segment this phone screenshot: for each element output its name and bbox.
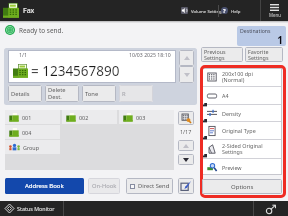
staticText: Favorite Settings	[248, 48, 269, 62]
button[interactable]: R	[119, 85, 153, 102]
staticText: 10/03 2025 18:10	[129, 51, 171, 58]
staticText: 2-Sided Original Settings	[222, 142, 263, 156]
button[interactable]: Density	[202, 105, 282, 121]
button[interactable]: A4	[202, 87, 282, 104]
button[interactable]: Volume Settings	[179, 0, 226, 21]
button[interactable]: Menu	[261, 0, 288, 21]
staticText: ?	[223, 7, 226, 14]
staticText: 001	[22, 114, 32, 121]
staticText: Status Monitor	[17, 205, 55, 212]
button[interactable]: Favorite Settings	[245, 47, 283, 62]
button[interactable]: Scroll down	[178, 154, 194, 165]
staticText: Menu	[269, 12, 281, 18]
button[interactable]: Options	[202, 179, 282, 194]
staticText: Fax	[23, 6, 35, 16]
button[interactable]: Previous Settings	[201, 47, 243, 62]
button[interactable]: Energy Saver	[254, 201, 288, 216]
staticText: = 1234567890	[31, 62, 120, 80]
button[interactable]: New destination	[178, 178, 194, 194]
staticText: 1/17	[180, 128, 192, 135]
staticText: Destinations	[240, 27, 271, 34]
button[interactable]: Tone	[82, 85, 116, 102]
button[interactable]: ?	[220, 0, 242, 21]
staticText: Help	[231, 8, 241, 14]
button[interactable]: Search destination	[178, 111, 194, 125]
button[interactable]: Scroll down	[179, 66, 194, 83]
staticText: Volume Settings	[191, 8, 224, 14]
staticText: Direct Send	[138, 182, 170, 190]
button[interactable]: Delete Dest.	[45, 85, 79, 102]
button[interactable]: Details	[8, 85, 42, 102]
button[interactable]: 004	[5, 125, 60, 139]
button[interactable]: Preview	[202, 159, 282, 175]
button[interactable]: On-Hook	[88, 178, 120, 194]
button[interactable]: 200x100 dpi (Normal)	[202, 68, 282, 86]
staticText: 003	[136, 114, 146, 121]
staticText: 002	[79, 114, 89, 121]
staticText: 004	[22, 129, 32, 136]
staticText: R	[122, 90, 126, 98]
staticText: A4	[222, 92, 229, 99]
button[interactable]: 003	[119, 110, 174, 124]
staticText: 1	[240, 33, 283, 45]
staticText: Address Book	[25, 182, 64, 190]
staticText: Options	[231, 183, 254, 191]
staticText: On-Hook	[92, 182, 117, 190]
button[interactable]: Group	[5, 140, 60, 154]
button[interactable]: Scroll up	[178, 140, 194, 151]
button[interactable]: Original Type	[202, 122, 282, 139]
button[interactable]: Scroll up	[179, 50, 194, 66]
staticText: 1/1	[19, 51, 27, 58]
staticText: Details	[11, 90, 30, 98]
staticText: Preview	[222, 164, 242, 171]
staticText: Previous Settings	[204, 48, 226, 62]
staticText: Delete Dest.	[48, 86, 66, 101]
button[interactable]: Status Monitor	[0, 201, 63, 216]
staticText: 200x100 dpi (Normal)	[222, 70, 253, 84]
staticText: Tone	[85, 90, 99, 98]
staticText: Ready to send.	[19, 26, 64, 35]
button[interactable]: 002	[62, 110, 117, 124]
button[interactable]: Address Book	[5, 178, 84, 194]
staticText: Density	[222, 110, 241, 117]
button[interactable]: 2-Sided Original Settings	[202, 140, 282, 158]
button[interactable]: 001	[5, 110, 60, 124]
button[interactable]: Direct Send	[126, 178, 173, 194]
staticText: Original Type	[222, 127, 256, 134]
staticText: Group	[23, 144, 39, 151]
